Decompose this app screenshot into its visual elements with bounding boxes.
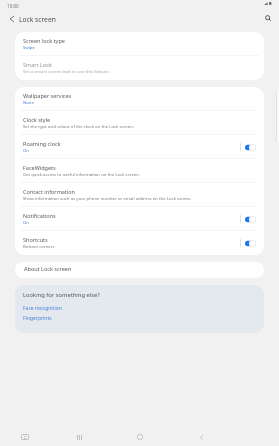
button[interactable]: FaceWidgets	[15, 159, 264, 183]
button[interactable]: Clock style	[15, 111, 264, 135]
staticText: Screen lock type	[23, 37, 65, 44]
staticText: Set a secure screen lock to use this fea…	[23, 68, 110, 74]
staticText: Wallpaper services	[23, 92, 72, 99]
button[interactable]: Recents	[70, 428, 88, 446]
button[interactable]: Screen lock type	[15, 32, 264, 56]
staticText: About Lock screen	[24, 265, 72, 272]
button[interactable]: Home	[131, 428, 149, 446]
staticText: Shortcuts	[23, 236, 48, 243]
staticText: Looking for something else?	[23, 291, 100, 299]
staticText: None	[23, 99, 34, 105]
staticText: Contact information	[23, 188, 75, 195]
button[interactable]: Smart Lock	[15, 56, 264, 80]
staticText: On	[23, 147, 30, 153]
button[interactable]: Back	[192, 428, 210, 446]
button[interactable]: Fingerprints	[23, 315, 52, 322]
button[interactable]: Face recognition	[23, 305, 62, 312]
staticText: Smart Lock	[23, 61, 52, 68]
staticText: Get quick access to useful information o…	[23, 171, 141, 177]
staticText: Show information such as your phone numb…	[23, 195, 192, 201]
button[interactable]: Toggle	[245, 144, 256, 151]
button[interactable]: Notifications	[15, 207, 264, 231]
staticText: Face recognition	[23, 305, 62, 312]
staticText: Swipe	[23, 44, 35, 50]
button[interactable]: Contact information	[15, 183, 264, 207]
staticText: Clock style	[23, 116, 51, 123]
staticText: Lock screen	[19, 15, 56, 24]
staticText: Notifications	[23, 212, 56, 219]
button[interactable]: Toggle	[245, 240, 256, 247]
button[interactable]: Roaming clock	[15, 135, 264, 159]
staticText: FaceWidgets	[23, 164, 56, 171]
button[interactable]: Shortcuts	[15, 231, 264, 255]
button[interactable]: Navigate up	[3, 10, 21, 28]
button[interactable]: Toggle	[245, 216, 256, 223]
button[interactable]: About Lock screen	[15, 262, 264, 278]
staticText: Fingerprints	[23, 315, 52, 322]
staticText: 10:00	[7, 3, 19, 9]
staticText: Roaming clock	[23, 140, 61, 147]
staticText: Bottom corners	[23, 243, 55, 249]
staticText: On	[23, 219, 30, 225]
button[interactable]: Wallpaper services	[15, 87, 264, 111]
button[interactable]: Search	[259, 9, 277, 27]
staticText: Set the type and colour of the clock on …	[23, 123, 134, 129]
button[interactable]: Hide navigation bar	[16, 428, 34, 446]
